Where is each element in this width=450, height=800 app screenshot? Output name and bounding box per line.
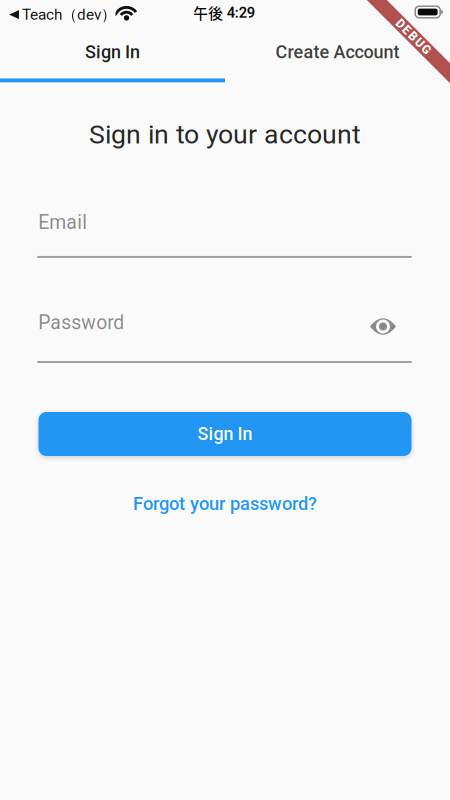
staticText: Sign in to your account	[89, 119, 361, 150]
staticText: Sign In	[197, 423, 252, 444]
button[interactable]: Show password	[361, 304, 405, 348]
button[interactable]: Sign In	[38, 412, 411, 456]
button[interactable]: Create Account	[225, 29, 450, 75]
staticText: Password	[38, 311, 124, 334]
button[interactable]: Email	[37, 209, 412, 259]
button[interactable]: Password	[37, 309, 412, 364]
staticText: 午後	[193, 2, 223, 23]
staticText: Create Account	[275, 41, 399, 63]
staticText: Forgot your password?	[133, 493, 317, 514]
staticText: Email	[38, 211, 87, 234]
button[interactable]: Forgot your password?	[125, 485, 325, 522]
staticText: Teach（dev）	[22, 5, 116, 24]
staticText: Sign In	[85, 41, 140, 63]
staticText: DEBUG	[391, 29, 435, 44]
staticText: 4:29	[227, 4, 255, 21]
button[interactable]: Sign In	[0, 29, 225, 75]
